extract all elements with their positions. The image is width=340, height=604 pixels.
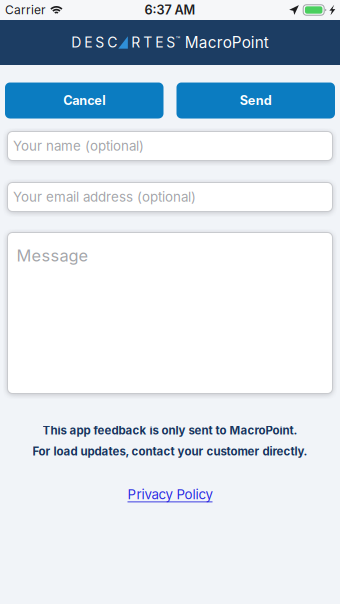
- staticText: Carrier: [5, 3, 46, 17]
- staticText: Your email address (optional): [13, 189, 196, 205]
- button[interactable]: Message: [7, 232, 332, 393]
- staticText: This app feedback is only sent to MacroP…: [42, 423, 297, 437]
- staticText: For load updates, contact your customer …: [32, 444, 307, 458]
- button[interactable]: Cancel: [5, 82, 163, 118]
- staticText: Message: [16, 245, 88, 265]
- staticText: Send: [240, 93, 272, 108]
- button[interactable]: Privacy Policy: [119, 481, 220, 507]
- staticText: Your name (optional): [13, 138, 144, 154]
- staticText: 6:37 AM: [144, 2, 195, 18]
- staticText: Privacy Policy: [127, 486, 212, 502]
- button[interactable]: Send: [176, 82, 335, 118]
- button[interactable]: Your email address (optional): [7, 182, 332, 211]
- staticText: ™: [176, 35, 180, 44]
- staticText: DESC: [71, 34, 117, 51]
- button[interactable]: Your name (optional): [7, 131, 332, 160]
- staticText: MacroPoint: [185, 33, 269, 52]
- staticText: RTES: [131, 34, 175, 51]
- staticText: Cancel: [63, 93, 105, 108]
